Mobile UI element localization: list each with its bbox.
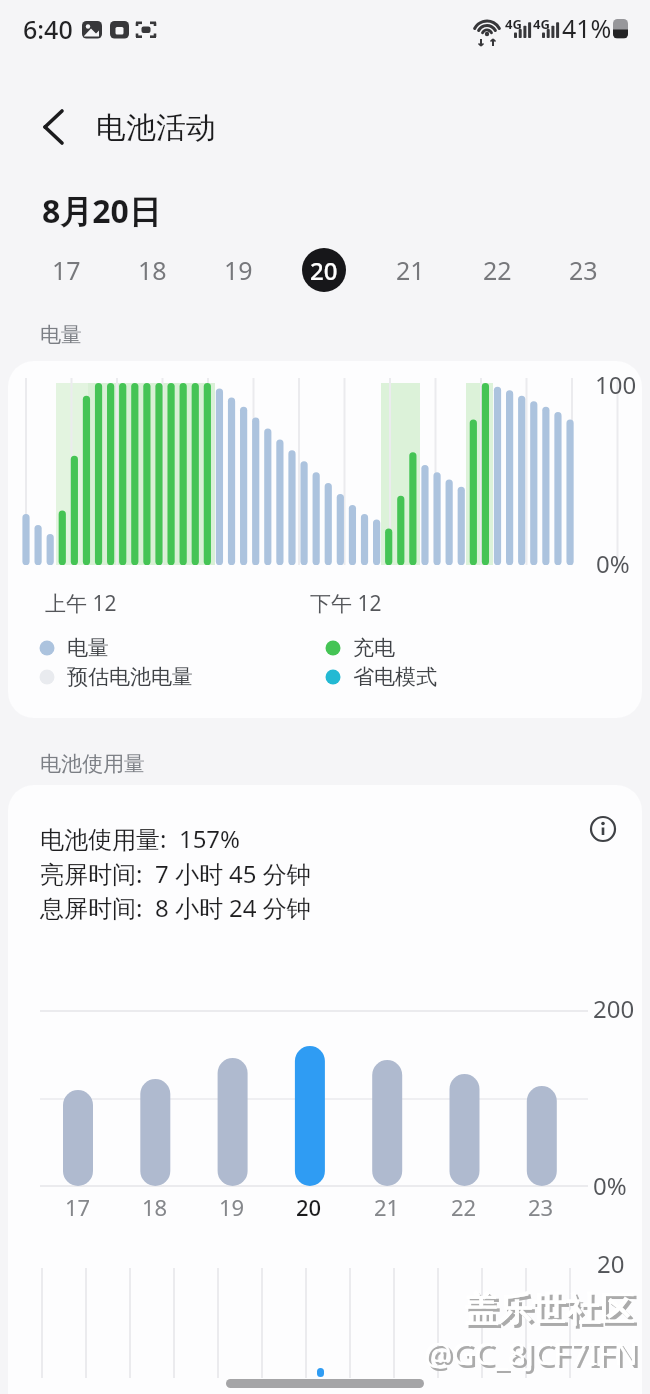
staticText: 省电模式 [353,664,437,690]
staticText: 21 [374,1192,400,1222]
staticText: 电量 [67,635,109,661]
staticText: 22 [451,1192,477,1222]
button[interactable] [30,105,76,151]
staticText: 6:40 [23,12,73,46]
staticText: 17 [52,253,81,287]
staticText: 8月20日 [42,189,161,233]
staticText: 17 [65,1192,91,1222]
button[interactable]: 20 [302,248,346,292]
staticText: @GC_8JCF7IFN [424,1332,638,1374]
button[interactable]: 21 [0,0,60,60]
staticText: 19 [224,253,253,287]
staticText: 21 [396,253,425,287]
button[interactable]: 23 [0,0,60,60]
staticText: @GC_8JCF7IFN [427,1335,641,1377]
staticText: 23 [569,253,598,287]
staticText: 电量 [40,322,82,348]
staticText: 20 [296,1192,322,1222]
staticText: 23 [528,1192,554,1222]
staticText: 0% [593,1169,627,1202]
staticText: 0% [596,547,630,580]
staticText: 20 [597,1247,625,1280]
button[interactable]: 19 [0,0,60,60]
staticText: 20 [310,254,338,287]
staticText: 盖乐世社区 [467,1291,637,1334]
staticText: 18 [142,1192,168,1222]
staticText: 下午 12 [310,589,382,618]
staticText: 41% [562,11,612,45]
staticText: 电池活动 [96,109,216,147]
staticText: 上午 12 [45,589,117,618]
staticText: 电池使用量 [40,751,145,777]
staticText: 4G [533,15,550,33]
staticText: 电池使用量: 157% [40,822,241,855]
staticText: 19 [219,1192,245,1222]
button[interactable]: 22 [0,0,60,60]
staticText: 100 [595,368,637,401]
staticText: 息屏时间: 8 小时 24 分钟 [40,891,311,924]
staticText: 4G [505,15,522,33]
staticText: 预估电池电量 [67,664,193,690]
button[interactable]: 18 [0,0,60,60]
staticText: 盖乐世社区 [464,1288,634,1331]
button[interactable] [586,812,622,848]
button[interactable]: 17 [0,0,60,60]
staticText: 充电 [353,635,395,661]
staticText: 200 [593,992,635,1025]
staticText: 亮屏时间: 7 小时 45 分钟 [40,857,311,890]
staticText: 18 [138,253,167,287]
staticText: 22 [483,253,512,287]
